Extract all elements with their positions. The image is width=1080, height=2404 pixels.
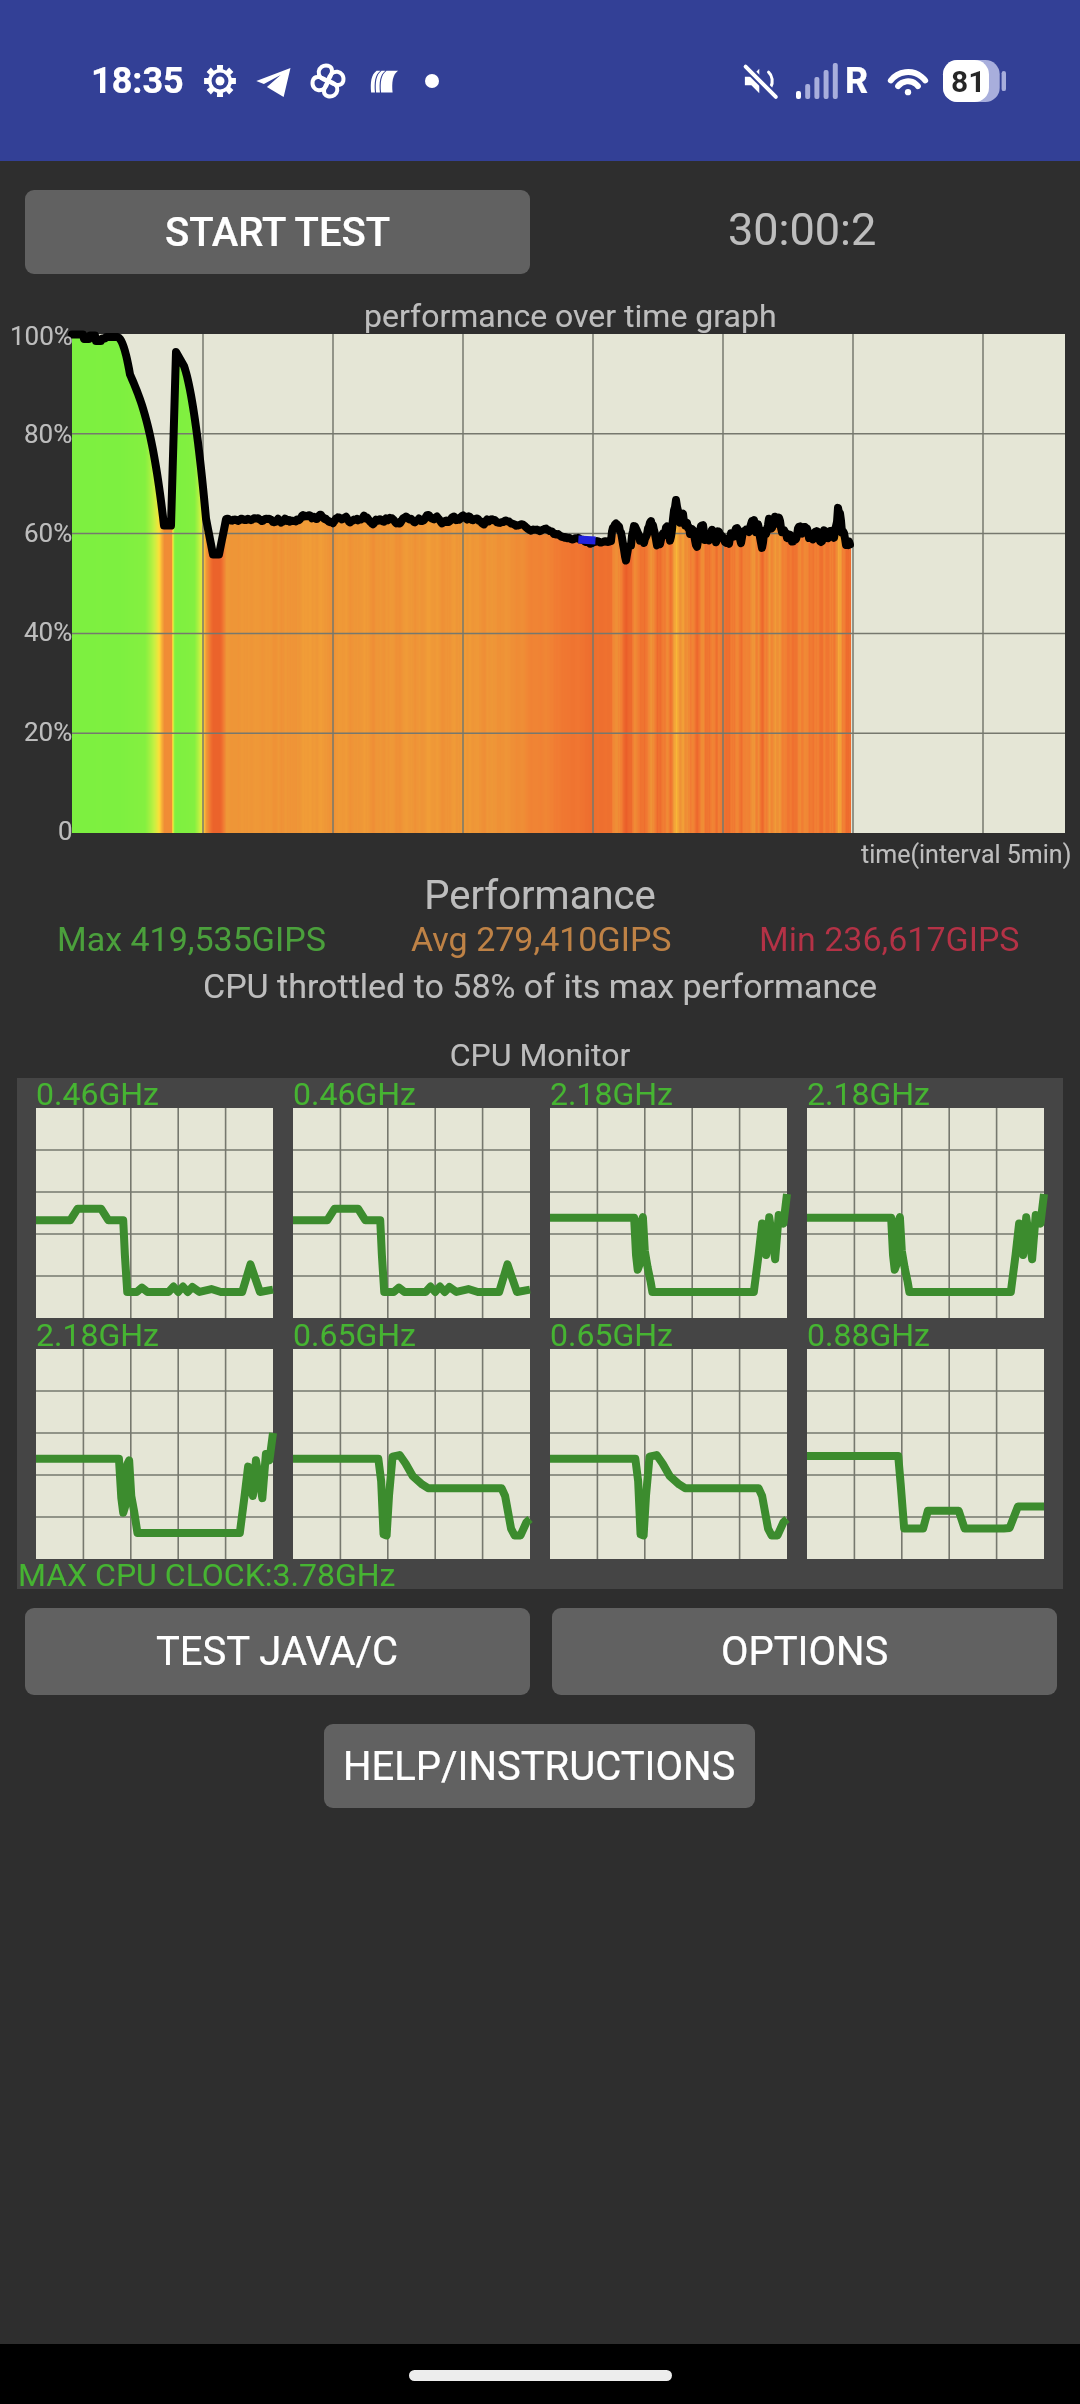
staticText: 2.18GHz xyxy=(36,1316,159,1354)
button[interactable]: TEST JAVA/C xyxy=(25,1608,530,1695)
button[interactable]: OPTIONS xyxy=(552,1608,1057,1695)
staticText: R xyxy=(845,60,869,102)
other: Photos xyxy=(309,62,347,100)
staticText: 0.46GHz xyxy=(293,1075,416,1113)
staticText: START TEST xyxy=(165,209,391,256)
staticText: 81 xyxy=(951,64,986,99)
staticText: 40% xyxy=(24,617,73,647)
staticText: OPTIONS xyxy=(721,1628,889,1675)
staticText: performance over time graph xyxy=(364,297,777,335)
staticText: 0.65GHz xyxy=(293,1316,416,1354)
staticText: 0.65GHz xyxy=(550,1316,673,1354)
staticText: MAX CPU CLOCK:3.78GHz xyxy=(18,1556,396,1594)
staticText: CPU throttled to 58% of its max performa… xyxy=(0,966,1080,1006)
staticText: 30:00:2 xyxy=(728,203,877,256)
staticText: Min 236,617GIPS xyxy=(759,919,1020,959)
staticText: 80% xyxy=(24,419,73,449)
staticText: 2.18GHz xyxy=(807,1075,930,1113)
other: Telegram xyxy=(254,62,292,100)
staticText: time(interval 5min) xyxy=(861,840,1072,869)
staticText: 18:35 xyxy=(91,60,184,102)
other: Settings xyxy=(202,63,238,99)
staticText: 0.46GHz xyxy=(36,1075,159,1113)
other: Muted xyxy=(742,63,778,99)
staticText: 100% xyxy=(10,321,73,351)
other: Signal xyxy=(796,63,842,99)
other: Notes xyxy=(367,65,399,97)
staticText: 0.88GHz xyxy=(807,1316,930,1354)
staticText: TEST JAVA/C xyxy=(156,1628,399,1675)
staticText: HELP/INSTRUCTIONS xyxy=(343,1743,736,1790)
button[interactable]: START TEST xyxy=(25,190,530,274)
staticText: 2.18GHz xyxy=(550,1075,673,1113)
staticText: 0 xyxy=(58,816,73,846)
staticText: 20% xyxy=(24,717,73,747)
staticText: Performance xyxy=(0,872,1080,919)
staticText: Avg 279,410GIPS xyxy=(411,919,672,959)
button[interactable]: HELP/INSTRUCTIONS xyxy=(324,1724,755,1808)
staticText: CPU Monitor xyxy=(0,1036,1080,1074)
staticText: 60% xyxy=(24,518,73,548)
staticText: Max 419,535GIPS xyxy=(57,919,326,959)
other: Wifi xyxy=(887,64,929,98)
